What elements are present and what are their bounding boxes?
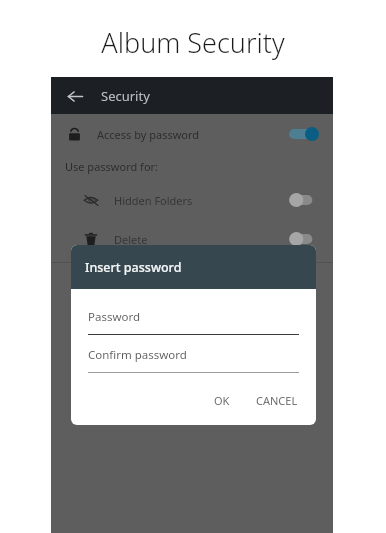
button[interactable]: Switch on <box>289 127 319 141</box>
staticText: Password <box>88 309 141 325</box>
staticText: Security <box>101 87 150 105</box>
staticText: Hidden Folders <box>114 193 193 208</box>
staticText: Confirm password <box>88 347 187 363</box>
button[interactable]: Password <box>88 309 299 335</box>
button[interactable]: CANCEL <box>248 388 306 413</box>
button[interactable]: Hidden Folders <box>51 182 333 218</box>
button[interactable]: OK <box>204 388 240 413</box>
button[interactable]: Back <box>60 81 90 111</box>
button[interactable]: Confirm password <box>88 347 299 373</box>
staticText: Delete <box>114 232 148 247</box>
button[interactable]: Delete <box>51 221 333 257</box>
staticText: Insert password <box>85 259 182 276</box>
staticText: Access by password <box>97 127 200 142</box>
button[interactable]: Switch off <box>289 232 319 246</box>
staticText: OK <box>214 393 230 408</box>
staticText: CANCEL <box>256 393 298 408</box>
button[interactable]: Switch off <box>289 193 319 207</box>
staticText: Use password for: <box>65 159 159 174</box>
staticText: Album Security <box>101 24 285 61</box>
button[interactable]: Access by password <box>51 114 333 154</box>
